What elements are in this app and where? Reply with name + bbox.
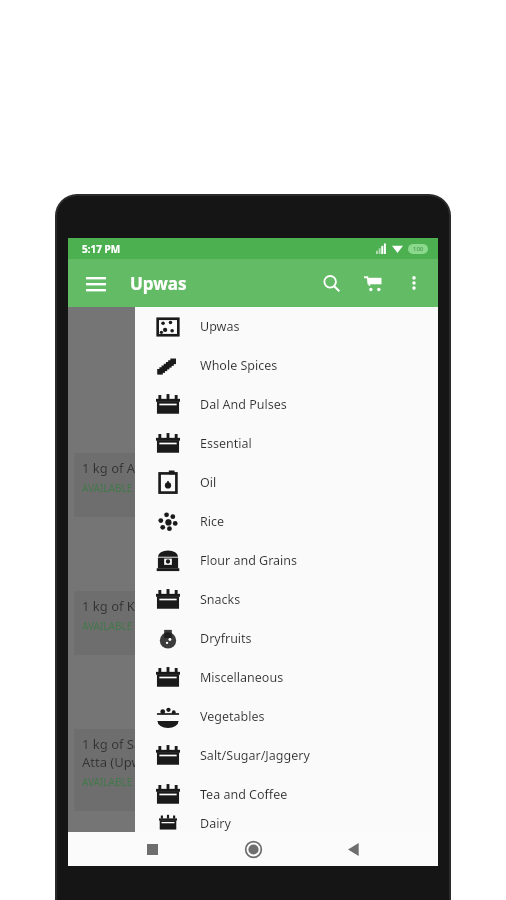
staticText: Oil xyxy=(200,474,217,491)
button[interactable]: Dairy xyxy=(135,814,438,832)
staticText: 5:17 PM xyxy=(82,242,121,256)
button[interactable]: Dryfruits xyxy=(135,619,438,658)
staticText: Upwas xyxy=(130,272,187,295)
button[interactable]: Whole Spices xyxy=(135,346,438,385)
staticText: 1 kg of Sabudana xyxy=(82,735,188,753)
button[interactable]: Back xyxy=(337,832,371,866)
button[interactable]: Oil xyxy=(135,463,438,502)
button[interactable]: Upwas xyxy=(135,307,438,346)
staticText: Dal And Pulses xyxy=(200,396,287,413)
staticText: AVAILABLE xyxy=(82,619,133,633)
button[interactable]: Dal And Pulses xyxy=(135,385,438,424)
staticText: Essential xyxy=(200,435,252,452)
staticText: 1 kg of Amba xyxy=(82,459,163,477)
staticText: Flour and Grains xyxy=(200,552,298,569)
button[interactable]: Flour and Grains xyxy=(135,541,438,580)
staticText: Dryfruits xyxy=(200,630,252,647)
button[interactable]: Home xyxy=(236,832,270,866)
staticText: AVAILABLE xyxy=(82,775,133,789)
staticText: 1 kg of Khajur xyxy=(82,597,167,615)
staticText: Upwas xyxy=(200,318,240,335)
button[interactable]: Search xyxy=(310,262,352,304)
staticText: Salt/Sugar/Jaggery xyxy=(200,747,310,764)
button[interactable]: Rice xyxy=(135,502,438,541)
staticText: Whole Spices xyxy=(200,357,278,374)
button[interactable]: Snacks xyxy=(135,580,438,619)
staticText: Vegetables xyxy=(200,708,265,725)
staticText: Snacks xyxy=(200,591,241,608)
button[interactable]: Recent apps xyxy=(135,832,169,866)
button[interactable]: More options xyxy=(394,263,434,303)
staticText: Atta (Upwas) xyxy=(82,753,160,771)
button[interactable]: Open navigation drawer xyxy=(76,263,116,303)
button[interactable]: Salt/Sugar/Jaggery xyxy=(135,736,438,775)
button[interactable]: Cart xyxy=(352,262,394,304)
staticText: Miscellaneous xyxy=(200,669,284,686)
button[interactable]: Essential xyxy=(135,424,438,463)
staticText: Dairy xyxy=(200,815,231,832)
button[interactable]: Miscellaneous xyxy=(135,658,438,697)
staticText: Tea and Coffee xyxy=(200,786,288,803)
button[interactable]: Tea and Coffee xyxy=(135,775,438,814)
staticText: Rice xyxy=(200,513,225,530)
staticText: AVAILABLE xyxy=(82,481,133,495)
staticText: 100 xyxy=(413,245,424,253)
button[interactable]: Vegetables xyxy=(135,697,438,736)
